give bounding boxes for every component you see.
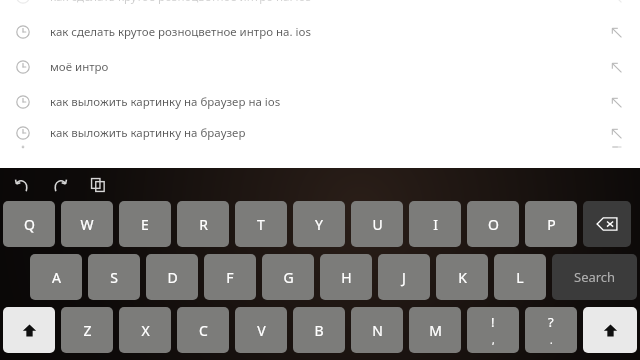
button[interactable]: C xyxy=(177,307,229,353)
staticText: как сделать крутое розноцветное интро на… xyxy=(50,24,311,40)
staticText: S xyxy=(110,268,118,287)
button[interactable]: как выложить картинку на браузер xyxy=(0,119,640,147)
button[interactable]: J xyxy=(378,254,430,300)
button[interactable]: Insert suggestion xyxy=(606,92,626,112)
staticText: T xyxy=(257,215,265,234)
button[interactable]: A xyxy=(30,254,82,300)
staticText: Z xyxy=(83,321,92,340)
button[interactable]: как сделать крутое розноцветное интро на… xyxy=(0,14,640,49)
staticText: как выложить картинку на браузер xyxy=(50,125,246,141)
button[interactable]: Search xyxy=(552,254,637,300)
button[interactable]: F xyxy=(204,254,256,300)
staticText: , xyxy=(492,333,495,347)
staticText: O xyxy=(488,215,499,234)
button[interactable]: G xyxy=(262,254,314,300)
button[interactable]: U xyxy=(351,201,403,247)
button[interactable]: как сделать крутое розноцветное интро на… xyxy=(0,0,640,14)
staticText: G xyxy=(283,268,294,287)
staticText: E xyxy=(141,215,149,234)
button[interactable]: K xyxy=(436,254,488,300)
button[interactable]: I xyxy=(409,201,461,247)
button[interactable]: E xyxy=(119,201,171,247)
button[interactable]: Insert suggestion xyxy=(606,123,626,143)
button[interactable]: Backspace xyxy=(583,201,631,247)
staticText: W xyxy=(80,215,94,234)
staticText: Y xyxy=(315,215,323,234)
button[interactable]: Undo xyxy=(10,173,34,197)
button[interactable]: Y xyxy=(293,201,345,247)
button[interactable]: M xyxy=(409,307,461,353)
staticText: B xyxy=(314,321,324,340)
staticText: C xyxy=(199,321,208,340)
staticText: Q xyxy=(24,215,35,234)
staticText: как сделать крутое розноцветное интро на… xyxy=(50,0,311,5)
button[interactable]: B xyxy=(293,307,345,353)
staticText: L xyxy=(516,268,524,287)
staticText: I xyxy=(433,215,438,234)
button[interactable]: Insert suggestion xyxy=(606,22,626,42)
button[interactable]: L xyxy=(494,254,546,300)
button[interactable]: Shift xyxy=(3,307,55,353)
staticText: X xyxy=(141,321,150,340)
staticText: K xyxy=(458,268,467,287)
staticText: моё интро xyxy=(50,59,109,75)
button[interactable]: T xyxy=(235,201,287,247)
staticText: R xyxy=(199,215,208,234)
staticText: J xyxy=(402,268,406,287)
button[interactable]: X xyxy=(119,307,171,353)
staticText: . xyxy=(550,333,553,347)
button[interactable]: ! xyxy=(467,307,519,353)
button[interactable]: W xyxy=(61,201,113,247)
staticText: как выложить картинку на браузер на ios xyxy=(50,94,281,110)
staticText: ? xyxy=(548,313,554,331)
staticText: ! xyxy=(491,313,495,331)
button[interactable]: ? xyxy=(525,307,577,353)
button[interactable]: V xyxy=(235,307,287,353)
button[interactable]: R xyxy=(177,201,229,247)
staticText: Search xyxy=(574,268,616,286)
staticText: U xyxy=(372,215,383,234)
staticText: M xyxy=(429,321,442,340)
button[interactable]: как выложить картинку на браузер на ios xyxy=(0,84,640,119)
staticText: H xyxy=(341,268,352,287)
staticText: F xyxy=(226,268,234,287)
staticText: V xyxy=(257,321,266,340)
button[interactable]: P xyxy=(525,201,577,247)
button[interactable]: Redo xyxy=(48,173,72,197)
button[interactable]: Insert suggestion xyxy=(606,57,626,77)
button[interactable]: H xyxy=(320,254,372,300)
button[interactable]: N xyxy=(351,307,403,353)
button[interactable]: Z xyxy=(61,307,113,353)
staticText: P xyxy=(547,215,556,234)
button[interactable]: Shift xyxy=(583,307,637,353)
button[interactable]: Copy xyxy=(86,173,110,197)
staticText: D xyxy=(167,268,178,287)
button[interactable]: Q xyxy=(3,201,55,247)
staticText: N xyxy=(372,321,383,340)
button[interactable]: D xyxy=(146,254,198,300)
button[interactable]: S xyxy=(88,254,140,300)
button[interactable]: O xyxy=(467,201,519,247)
staticText: A xyxy=(52,268,61,287)
button[interactable]: моё интро xyxy=(0,49,640,84)
